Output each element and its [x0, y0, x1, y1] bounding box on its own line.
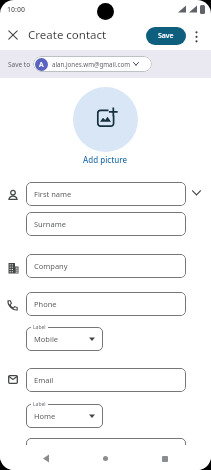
staticText: Phone [34, 299, 57, 309]
staticText: Save [158, 31, 174, 41]
button[interactable]: A [33, 56, 152, 72]
button[interactable]: Company [26, 254, 186, 278]
button[interactable]: Home [26, 404, 103, 428]
button[interactable]: Save [146, 27, 186, 45]
staticText: Add picture [83, 154, 128, 165]
staticText: Company [34, 261, 68, 271]
button[interactable] [8, 30, 18, 40]
button[interactable]: Email [26, 368, 186, 392]
button[interactable] [192, 190, 201, 196]
button[interactable] [103, 456, 108, 461]
button[interactable]: Mobile [26, 327, 103, 351]
staticText: Save to [8, 60, 31, 69]
button[interactable]: Add picture [0, 154, 211, 165]
staticText: Email [34, 375, 54, 385]
staticText: alan.jones.wm@gmail.com [52, 60, 130, 68]
staticText: Surname [34, 219, 66, 229]
staticText: Home [34, 411, 56, 421]
staticText: Label [33, 401, 46, 408]
staticText: 10:00 [7, 5, 25, 15]
button[interactable] [193, 31, 200, 43]
staticText: Label [33, 324, 46, 331]
staticText: Mobile [34, 334, 59, 344]
staticText: A [39, 60, 44, 70]
button[interactable] [162, 456, 168, 462]
staticText: Create contact [28, 27, 107, 43]
button[interactable]: Surname [26, 212, 186, 236]
button[interactable]: First name [26, 182, 186, 206]
button[interactable] [73, 87, 138, 152]
button[interactable] [42, 454, 50, 463]
staticText: First name [34, 189, 72, 199]
button[interactable]: Phone [26, 292, 186, 316]
